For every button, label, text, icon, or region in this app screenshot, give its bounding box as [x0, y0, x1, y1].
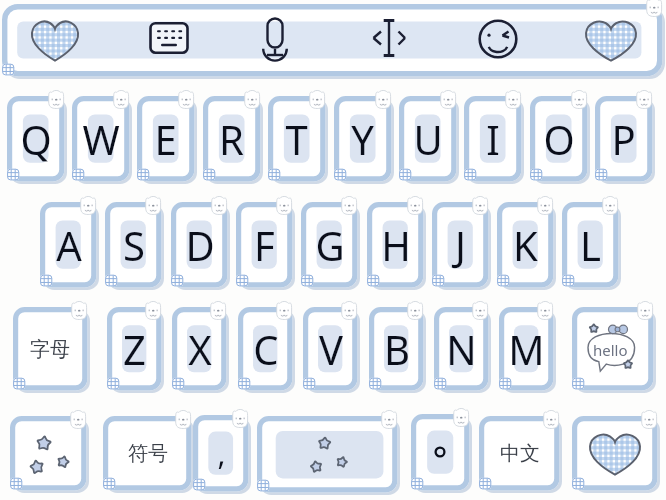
button[interactable]: C	[238, 307, 295, 393]
button[interactable]: Q	[7, 96, 67, 184]
button[interactable]: Keyboard layout	[141, 21, 197, 55]
staticText: G	[315, 218, 345, 272]
button[interactable]: H	[367, 202, 426, 290]
button[interactable]: Move cursor	[362, 17, 416, 59]
button[interactable]: K	[497, 202, 556, 290]
button[interactable]: Language	[479, 416, 562, 493]
staticText: ,	[217, 433, 226, 474]
staticText: 中文	[500, 441, 540, 466]
button[interactable]: Space	[257, 416, 400, 495]
staticText: 符号	[128, 441, 168, 466]
button[interactable]: S	[105, 202, 164, 290]
staticText: F	[254, 218, 275, 272]
staticText: Z	[123, 322, 146, 376]
staticText: I	[486, 112, 500, 166]
button[interactable]	[2, 4, 665, 79]
button[interactable]: P	[595, 96, 655, 184]
staticText: X	[188, 322, 212, 376]
staticText: R	[219, 112, 244, 166]
button[interactable]: T	[268, 96, 328, 184]
button[interactable]: O	[530, 96, 590, 184]
staticText: hello	[593, 340, 628, 360]
staticText: L	[580, 218, 601, 272]
button[interactable]: G	[301, 202, 360, 290]
staticText: Y	[351, 112, 374, 166]
staticText: N	[446, 322, 477, 376]
staticText: H	[381, 218, 411, 272]
staticText: T	[285, 112, 308, 166]
button[interactable]: U	[399, 96, 459, 184]
button[interactable]: Theme	[31, 18, 79, 61]
staticText: M	[508, 322, 545, 376]
button[interactable]: M	[499, 307, 556, 393]
button[interactable]: V	[303, 307, 360, 393]
staticText: D	[185, 218, 215, 272]
button[interactable]: F	[236, 202, 295, 290]
staticText: P	[611, 112, 636, 166]
staticText: S	[123, 218, 145, 272]
button[interactable]: Symbols	[103, 416, 194, 493]
staticText: W	[82, 112, 120, 166]
staticText: 字母	[30, 337, 70, 362]
staticText: E	[154, 112, 177, 166]
button[interactable]: Emoji	[473, 14, 523, 64]
button[interactable]: D	[171, 202, 230, 290]
button[interactable]: L	[562, 202, 621, 290]
button[interactable]: R	[203, 96, 263, 184]
button[interactable]: Z	[107, 307, 164, 393]
button[interactable]: Letters	[13, 307, 90, 393]
staticText: K	[513, 218, 538, 272]
button[interactable]: Comma	[193, 415, 251, 494]
button[interactable]: Voice input	[255, 13, 295, 63]
button[interactable]: E	[137, 96, 197, 184]
button[interactable]: Emoticons	[10, 416, 89, 493]
staticText: C	[253, 322, 279, 376]
button[interactable]: Enter	[572, 416, 660, 493]
staticText: V	[319, 322, 343, 376]
button[interactable]: W	[72, 96, 132, 184]
staticText: A	[56, 218, 82, 272]
staticText: Q	[20, 112, 52, 166]
button[interactable]: Period	[411, 414, 472, 493]
button[interactable]: N	[434, 307, 491, 393]
button[interactable]: B	[369, 307, 426, 393]
staticText: U	[413, 112, 443, 166]
staticText: J	[455, 218, 466, 272]
button[interactable]: Y	[334, 96, 394, 184]
button[interactable]: X	[172, 307, 229, 393]
button[interactable]: J	[432, 202, 491, 290]
button[interactable]: A	[40, 202, 99, 290]
button[interactable]: Stickers	[585, 18, 637, 61]
staticText: O	[543, 112, 575, 166]
button[interactable]: I	[464, 96, 524, 184]
button[interactable]: Sticker	[572, 307, 656, 393]
staticText: B	[384, 322, 410, 376]
